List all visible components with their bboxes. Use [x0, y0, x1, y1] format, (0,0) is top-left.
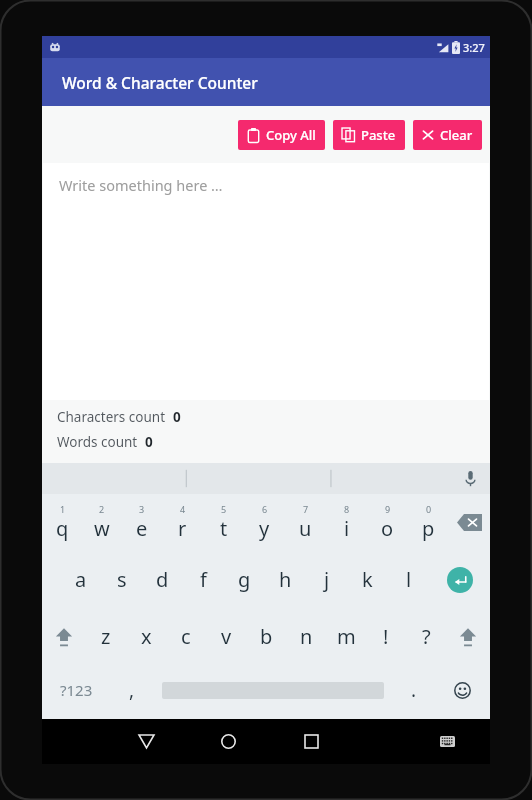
staticText: v: [221, 623, 232, 650]
staticText: ?123: [60, 680, 93, 700]
button[interactable]: ,: [110, 665, 153, 715]
staticText: o: [381, 515, 394, 542]
button[interactable]: Backspace: [449, 494, 490, 551]
button[interactable]: 0: [408, 494, 449, 551]
button[interactable]: Copy All: [238, 120, 325, 150]
button[interactable]: Write something here …: [43, 163, 489, 400]
button[interactable]: 6: [244, 494, 285, 551]
staticText: i: [344, 515, 350, 542]
staticText: 4: [180, 503, 186, 515]
button[interactable]: g: [224, 551, 265, 608]
staticText: u: [299, 515, 312, 542]
staticText: 3: [139, 503, 145, 515]
staticText: a: [75, 566, 87, 593]
button[interactable]: 9: [367, 494, 408, 551]
button[interactable]: b: [246, 608, 286, 665]
staticText: 5: [221, 503, 227, 515]
staticText: Word & Character Counter: [62, 72, 258, 93]
staticText: Write something here …: [59, 175, 223, 195]
staticText: !: [383, 623, 389, 650]
button[interactable]: f: [183, 551, 224, 608]
staticText: z: [101, 623, 111, 650]
button[interactable]: s: [101, 551, 142, 608]
button[interactable]: 4: [162, 494, 203, 551]
staticText: m: [337, 623, 356, 650]
button[interactable]: Space: [153, 665, 392, 715]
staticText: 6: [262, 503, 268, 515]
button[interactable]: m: [326, 608, 366, 665]
button[interactable]: k: [347, 551, 388, 608]
button[interactable]: Hide keyboard: [419, 719, 476, 764]
button[interactable]: d: [142, 551, 183, 608]
button[interactable]: Recent apps: [283, 719, 340, 764]
staticText: 0: [426, 503, 432, 515]
button[interactable]: h: [265, 551, 306, 608]
staticText: j: [324, 566, 330, 593]
staticText: t: [220, 515, 228, 542]
button[interactable]: 1: [42, 494, 82, 551]
staticText: r: [178, 515, 187, 542]
staticText: 2: [99, 503, 105, 515]
staticText: 0: [173, 408, 181, 426]
button[interactable]: a: [61, 551, 101, 608]
staticText: e: [136, 515, 148, 542]
staticText: Copy All: [266, 126, 316, 144]
staticText: k: [362, 566, 373, 593]
button[interactable]: Shift: [446, 608, 490, 665]
button[interactable]: ?: [406, 608, 446, 665]
staticText: x: [141, 623, 152, 650]
button[interactable]: .: [392, 665, 435, 715]
staticText: Words count: [57, 433, 138, 451]
staticText: p: [422, 515, 435, 542]
staticText: .: [411, 677, 417, 703]
button[interactable]: Back: [118, 719, 174, 764]
staticText: Paste: [361, 126, 396, 144]
staticText: f: [200, 566, 207, 593]
staticText: w: [94, 515, 110, 542]
button[interactable]: j: [306, 551, 347, 608]
button[interactable]: l: [388, 551, 429, 608]
button[interactable]: ?123: [42, 665, 110, 715]
button[interactable]: 8: [326, 494, 367, 551]
button[interactable]: Emoji: [435, 665, 490, 715]
staticText: y: [259, 515, 270, 542]
button[interactable]: x: [126, 608, 166, 665]
button[interactable]: 3: [122, 494, 162, 551]
staticText: d: [156, 566, 169, 593]
button[interactable]: v: [206, 608, 246, 665]
staticText: h: [279, 566, 292, 593]
staticText: l: [406, 566, 412, 593]
staticText: 8: [344, 503, 350, 515]
staticText: 3:27: [463, 40, 485, 55]
button[interactable]: 7: [285, 494, 326, 551]
staticText: c: [181, 623, 191, 650]
staticText: 9: [385, 503, 391, 515]
staticText: Clear: [440, 126, 473, 144]
staticText: Characters count: [57, 408, 166, 426]
staticText: n: [300, 623, 313, 650]
button[interactable]: Paste: [333, 120, 405, 150]
button[interactable]: Clear: [413, 120, 482, 150]
button[interactable]: Shift: [42, 608, 86, 665]
other: Voice input: [465, 471, 476, 487]
staticText: 1: [60, 503, 66, 515]
button[interactable]: Enter: [429, 551, 490, 608]
staticText: ?: [422, 623, 431, 650]
staticText: ,: [129, 677, 135, 703]
staticText: 0: [145, 433, 153, 451]
staticText: b: [260, 623, 273, 650]
staticText: s: [117, 566, 127, 593]
button[interactable]: 5: [203, 494, 244, 551]
button[interactable]: Home: [200, 719, 257, 764]
staticText: q: [56, 515, 69, 542]
staticText: 7: [303, 503, 309, 515]
button[interactable]: n: [286, 608, 326, 665]
button[interactable]: 2: [82, 494, 122, 551]
staticText: g: [238, 566, 251, 593]
button[interactable]: z: [86, 608, 126, 665]
button[interactable]: !: [366, 608, 406, 665]
button[interactable]: c: [166, 608, 206, 665]
